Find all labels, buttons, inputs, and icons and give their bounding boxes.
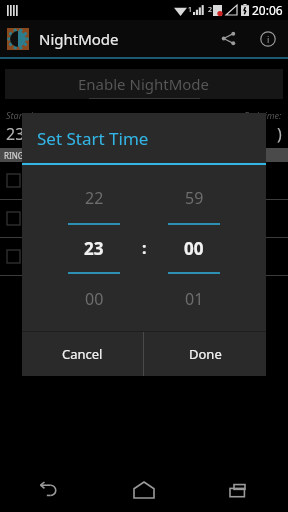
staticText: 20:06 <box>252 2 283 18</box>
staticText: Done <box>189 345 222 363</box>
staticText: RINGER <box>4 150 34 161</box>
button[interactable]: Recent apps <box>192 468 288 512</box>
staticText: ) <box>277 123 282 145</box>
staticText: 01 <box>185 288 204 310</box>
staticText: 00 <box>85 288 104 310</box>
staticText: 59 <box>185 187 204 209</box>
button[interactable]: Back <box>0 468 96 512</box>
button[interactable]: Home <box>96 468 192 512</box>
staticText: 22 <box>85 187 104 209</box>
staticText: Enable NightMode <box>78 74 210 94</box>
staticText: Set Start Time <box>37 127 149 150</box>
staticText: 23 <box>84 237 104 260</box>
staticText: 23 <box>6 123 25 145</box>
button[interactable] <box>0 238 288 275</box>
button[interactable] <box>0 200 288 237</box>
button[interactable] <box>0 162 288 199</box>
staticText: 2 <box>208 5 213 15</box>
staticText: 1 <box>188 5 193 15</box>
staticText: : <box>142 237 147 259</box>
staticText: NightMode <box>39 29 119 49</box>
button[interactable]: Enable NightMode <box>5 69 283 99</box>
staticText: Cancel <box>62 345 103 363</box>
staticText: 00 <box>184 237 204 260</box>
button[interactable]: Cancel <box>22 332 143 376</box>
button[interactable]: Info <box>248 20 288 57</box>
staticText: End time: <box>244 109 282 121</box>
button[interactable]: Share <box>208 20 248 57</box>
staticText: Start time: <box>6 109 48 121</box>
button[interactable]: Done <box>144 332 266 376</box>
staticText: i <box>267 33 270 45</box>
